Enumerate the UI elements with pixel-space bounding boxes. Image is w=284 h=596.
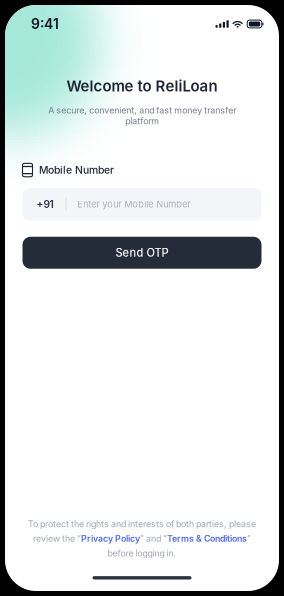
staticText: Mobile Number xyxy=(39,164,114,176)
staticText: Enter your Mobile Number xyxy=(77,199,190,210)
staticText: Privacy Policy xyxy=(81,533,140,544)
button[interactable]: Terms & Conditions xyxy=(167,533,247,544)
staticText: Terms & Conditions xyxy=(167,533,247,544)
staticText: before logging in. xyxy=(107,548,176,559)
staticText: 9:41 xyxy=(31,16,59,32)
staticText: To protect the rights and interests of b… xyxy=(28,519,256,529)
staticText: Welcome to ReliLoan xyxy=(66,77,217,95)
button[interactable]: Send OTP xyxy=(5,237,279,269)
button[interactable]: Privacy Policy xyxy=(81,533,140,544)
staticText: +91 xyxy=(36,198,53,210)
staticText: Send OTP xyxy=(115,246,168,259)
staticText: A secure, convenient, and fast money tra… xyxy=(48,105,236,126)
staticText: ” xyxy=(247,533,251,544)
staticText: review the “ xyxy=(33,533,81,544)
staticText: ” and “ xyxy=(140,533,167,544)
